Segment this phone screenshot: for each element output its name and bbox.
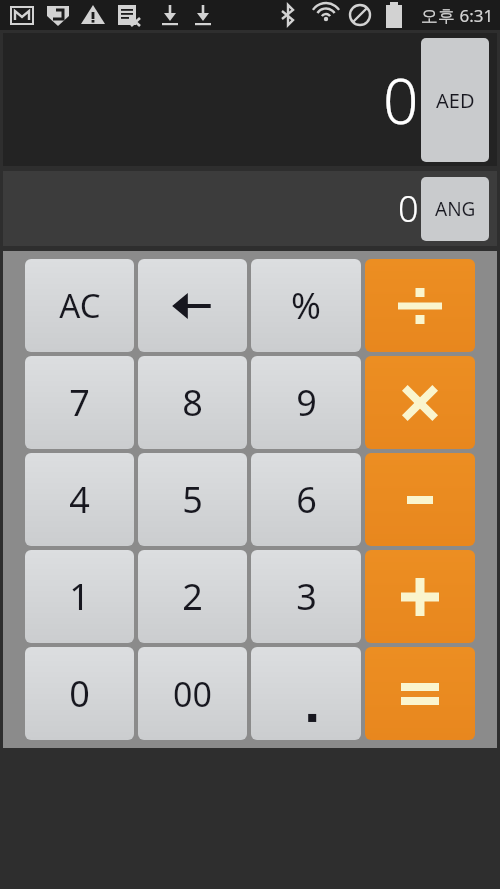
button[interactable]: Equals (365, 647, 475, 740)
button[interactable]: Multiply (365, 356, 475, 449)
staticText: 0 (398, 184, 419, 233)
button[interactable]: 1 (25, 550, 134, 643)
button[interactable]: 6 (251, 453, 361, 546)
staticText: 9 (296, 378, 317, 427)
staticText: 4 (69, 475, 90, 524)
button[interactable]: 0 (25, 647, 134, 740)
staticText: 0 (69, 669, 90, 718)
staticText: 3 (296, 572, 317, 621)
staticText: % (291, 281, 321, 330)
button[interactable]: AED (421, 38, 489, 162)
button[interactable]: Add (365, 550, 475, 643)
button[interactable]: 2 (138, 550, 247, 643)
button[interactable]: 4 (25, 453, 134, 546)
staticText: 1 (69, 572, 90, 621)
staticText: 5 (182, 475, 203, 524)
staticText: 오후 6:31 (421, 4, 494, 27)
staticText: 0 (383, 58, 419, 142)
button[interactable]: 00 (138, 647, 247, 740)
button[interactable]: 3 (251, 550, 361, 643)
button[interactable]: 8 (138, 356, 247, 449)
staticText: 7 (69, 378, 90, 427)
button[interactable]: 7 (25, 356, 134, 449)
staticText: AC (59, 283, 101, 328)
staticText: 00 (173, 671, 212, 717)
button[interactable]: AC (25, 259, 134, 352)
staticText: 2 (182, 572, 203, 621)
button[interactable]: 5 (138, 453, 247, 546)
staticText: 8 (182, 378, 203, 427)
staticText: 6 (296, 475, 317, 524)
staticText: AED (436, 87, 475, 114)
button[interactable]: 9 (251, 356, 361, 449)
button[interactable]: Subtract (365, 453, 475, 546)
button[interactable]: Divide (365, 259, 475, 352)
button[interactable]: ANG (421, 177, 489, 241)
staticText: ANG (435, 196, 476, 222)
button[interactable]: % (251, 259, 361, 352)
button[interactable]: Backspace (138, 259, 247, 352)
button[interactable] (251, 647, 361, 740)
